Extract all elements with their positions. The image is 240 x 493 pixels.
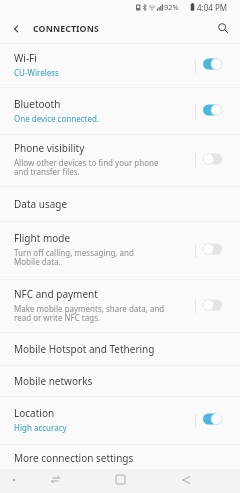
- staticText: Bluetooth: [14, 97, 61, 111]
- button[interactable]: Turn off: [201, 57, 224, 71]
- staticText: High accuracy: [14, 422, 67, 433]
- button[interactable]: Recents: [22, 469, 88, 490]
- button[interactable]: Turn on: [201, 298, 224, 312]
- button[interactable]: Home: [88, 469, 153, 490]
- button[interactable]: Data usage: [0, 187, 240, 221]
- button[interactable]: Flight mode: [0, 222, 240, 279]
- button[interactable]: Mobile Hotspot and Tethering: [0, 333, 240, 365]
- button[interactable]: NFC and payment: [0, 280, 240, 332]
- button[interactable]: Keyboard: [0, 469, 27, 490]
- button[interactable]: Turn on: [201, 152, 224, 166]
- staticText: 92%: [164, 2, 179, 12]
- button[interactable]: Turn on: [201, 242, 224, 256]
- staticText: Turn off calling, messaging, and Mobile …: [14, 247, 134, 268]
- staticText: Data usage: [14, 197, 68, 211]
- staticText: Location: [14, 406, 55, 420]
- button[interactable]: Location: [0, 397, 240, 444]
- button[interactable]: Search: [206, 14, 240, 43]
- staticText: 4:04 PM: [197, 2, 228, 13]
- staticText: Mobile networks: [14, 374, 93, 388]
- staticText: Make mobile payments, share data, and re…: [14, 303, 165, 324]
- staticText: Mobile Hotspot and Tethering: [14, 342, 155, 356]
- button[interactable]: Wi-Fi: [0, 44, 240, 87]
- staticText: Flight mode: [14, 231, 71, 245]
- button[interactable]: Back: [153, 469, 218, 490]
- button[interactable]: Phone visibility: [0, 135, 240, 186]
- button[interactable]: Turn off: [201, 103, 224, 117]
- button[interactable]: More connection settings: [0, 445, 240, 476]
- staticText: Allow other devices to find your phone a…: [14, 157, 159, 178]
- button[interactable]: Back: [0, 14, 32, 43]
- staticText: More connection settings: [14, 451, 134, 465]
- staticText: One device connected.: [14, 113, 99, 124]
- button[interactable]: Mobile networks: [0, 366, 240, 396]
- button[interactable]: Turn off: [201, 412, 224, 426]
- staticText: Phone visibility: [14, 141, 85, 155]
- staticText: CONNECTIONS: [33, 23, 99, 35]
- staticText: Wi-Fi: [14, 51, 37, 65]
- staticText: CU-Wireless: [14, 67, 59, 78]
- staticText: NFC and payment: [14, 287, 98, 301]
- button[interactable]: Bluetooth: [0, 88, 240, 134]
